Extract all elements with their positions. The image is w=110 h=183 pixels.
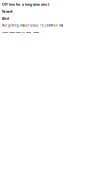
staticText: Lorem ipsum dolor sit amet, consec <box>2 30 39 34</box>
staticText: Not getting data of cursus. 10:28AM on m… <box>2 24 63 27</box>
staticText: Alert <box>2 17 9 21</box>
staticText: Nework <box>2 10 13 14</box>
staticText: Off line for a long time alert <box>2 2 49 7</box>
